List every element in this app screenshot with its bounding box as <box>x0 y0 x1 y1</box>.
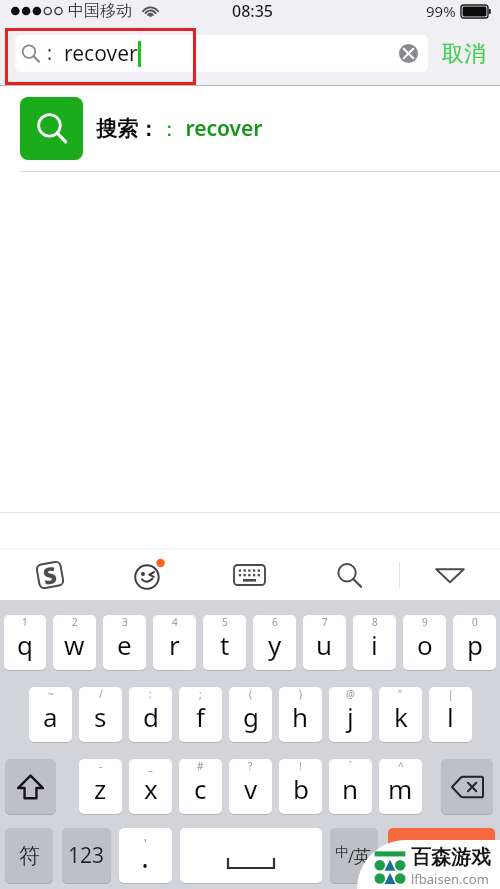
staticText: : <box>149 687 152 701</box>
button[interactable]: 7 <box>303 615 346 670</box>
button[interactable]: 3 <box>103 615 146 670</box>
button[interactable]: Punctuation <box>119 828 172 883</box>
staticText: 3 <box>122 615 128 629</box>
staticText: z <box>94 771 107 806</box>
staticText: 符 <box>19 843 40 869</box>
button[interactable]: Sogou input method <box>0 549 99 600</box>
staticText: @ <box>346 687 355 701</box>
button[interactable]: 9 <box>403 615 446 670</box>
staticText: 8 <box>372 615 378 629</box>
button[interactable]: : <box>15 35 428 72</box>
staticText: ! <box>299 759 302 773</box>
button[interactable]: / <box>79 687 122 742</box>
button[interactable]: ~ <box>29 687 72 742</box>
staticText: x <box>144 771 158 806</box>
staticText: m <box>388 771 413 806</box>
staticText: f <box>196 699 205 734</box>
staticText: ^ <box>398 759 404 773</box>
staticText: 5 <box>222 615 228 629</box>
button[interactable]: 123 <box>62 828 111 883</box>
staticText: 123 <box>68 841 105 870</box>
button[interactable]: 6 <box>253 615 296 670</box>
staticText: ' <box>144 835 147 851</box>
staticText: c <box>194 771 207 806</box>
staticText: s <box>94 699 107 734</box>
staticText: 4 <box>172 615 178 629</box>
button[interactable]: ! <box>279 759 322 814</box>
staticText: / <box>99 687 103 701</box>
button[interactable]: ` <box>329 759 372 814</box>
staticText: 6 <box>272 615 278 629</box>
button[interactable]: ( <box>229 687 272 742</box>
button[interactable]: Shift <box>5 759 56 814</box>
staticText: r <box>169 627 180 662</box>
button[interactable]: ^ <box>379 759 422 814</box>
button[interactable]: _ <box>129 759 172 814</box>
button[interactable]: Switch Chinese English <box>330 828 378 883</box>
staticText: - <box>99 759 103 773</box>
button[interactable]: 符 <box>5 828 53 883</box>
staticText: lfbaisen.com <box>411 870 489 888</box>
staticText: u <box>316 627 333 662</box>
button[interactable]: 1 <box>4 615 46 670</box>
button[interactable]: 5 <box>203 615 246 670</box>
staticText: v <box>244 771 258 806</box>
button[interactable]: | <box>429 687 472 742</box>
button[interactable]: # <box>179 759 222 814</box>
button[interactable]: " <box>379 687 422 742</box>
staticText: ? <box>248 759 253 773</box>
button[interactable]: 取消 <box>428 22 500 85</box>
staticText: 08:35 <box>232 0 273 22</box>
button[interactable]: Search <box>388 828 495 883</box>
button[interactable]: 4 <box>153 615 196 670</box>
staticText: e <box>117 627 132 662</box>
button[interactable]: - <box>79 759 122 814</box>
button[interactable]: 搜索： <box>0 86 500 171</box>
staticText: 2 <box>72 615 78 629</box>
button[interactable]: @ <box>329 687 372 742</box>
button[interactable]: Backspace <box>441 759 493 814</box>
staticText: recover <box>64 39 138 68</box>
staticText: l <box>447 699 454 734</box>
staticText: : <box>47 40 53 66</box>
staticText: ： recover <box>159 114 263 143</box>
button[interactable]: Keyboard layout <box>199 549 299 600</box>
staticText: q <box>17 627 33 662</box>
button[interactable]: Clear text <box>399 44 418 63</box>
button[interactable]: Hide keyboard <box>400 549 500 600</box>
button[interactable]: ; <box>179 687 222 742</box>
staticText: n <box>342 771 359 806</box>
staticText: | <box>448 687 454 701</box>
button[interactable]: ? <box>229 759 272 814</box>
staticText: o <box>417 627 433 662</box>
button[interactable]: ) <box>279 687 322 742</box>
staticText: 0 <box>472 615 478 629</box>
staticText: w <box>64 627 85 662</box>
staticText: a <box>43 699 58 734</box>
staticText: • <box>142 855 149 877</box>
staticText: 1 <box>22 615 28 629</box>
staticText: 99% <box>426 1 456 21</box>
staticText: " <box>398 687 403 701</box>
staticText: b <box>293 771 309 806</box>
staticText: i <box>371 627 378 662</box>
staticText: 百森游戏 <box>411 845 491 870</box>
staticText: ` <box>349 759 352 773</box>
button[interactable]: 8 <box>353 615 396 670</box>
staticText: h <box>292 699 309 734</box>
staticText: p <box>467 627 483 662</box>
button[interactable]: Space <box>180 828 322 883</box>
button[interactable]: 0 <box>453 615 496 670</box>
staticText: d <box>143 699 159 734</box>
button[interactable]: 2 <box>53 615 96 670</box>
staticText: ( <box>249 687 252 701</box>
button[interactable]: Search <box>299 549 399 600</box>
staticText: # <box>197 759 204 773</box>
staticText: S <box>40 558 60 591</box>
button[interactable]: Emoji <box>99 549 199 600</box>
staticText: g <box>243 699 259 734</box>
staticText: ~ <box>48 687 54 701</box>
staticText: y <box>268 627 282 662</box>
button[interactable]: : <box>129 687 172 742</box>
staticText: ) <box>299 687 302 701</box>
